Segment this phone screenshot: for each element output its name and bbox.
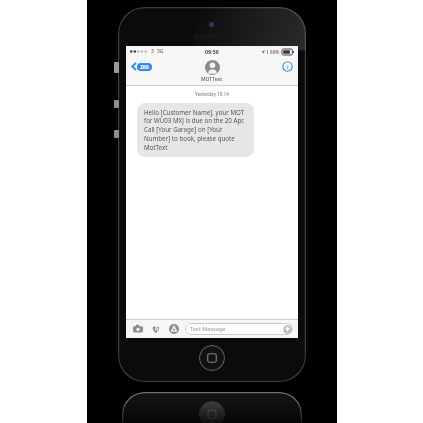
button[interactable]: Back <box>130 61 153 72</box>
staticText: Hello [Customer Name], your MOT for WU03… <box>144 108 247 152</box>
button[interactable]: Digital Touch <box>149 322 162 335</box>
staticText: 260 <box>140 64 149 71</box>
staticText: 86% <box>270 49 280 55</box>
button[interactable]: Camera <box>131 322 144 335</box>
button[interactable]: Apps <box>167 322 180 335</box>
staticText: 09:58 <box>205 48 219 55</box>
staticText: i <box>287 63 289 71</box>
staticText: Text Message <box>190 325 226 333</box>
button[interactable]: MOTText <box>201 60 223 83</box>
staticText: 3G <box>157 48 164 55</box>
button[interactable]: Home <box>199 345 225 371</box>
staticText: Yesterday 15:14 <box>195 91 229 97</box>
staticText: MOTText <box>201 76 223 83</box>
button[interactable]: Hello [Customer Name], your MOT for WU03… <box>137 103 254 157</box>
button[interactable]: Send <box>283 325 292 334</box>
button[interactable]: Text Message <box>185 323 293 335</box>
button[interactable]: Details <box>282 61 293 72</box>
staticText: 3 <box>151 48 154 55</box>
